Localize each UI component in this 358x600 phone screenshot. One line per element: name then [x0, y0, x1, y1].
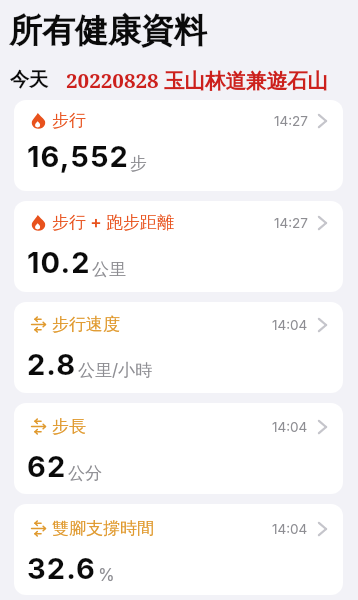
staticText: 步: [130, 153, 147, 174]
button[interactable]: 步行速度: [14, 302, 343, 393]
button[interactable]: 雙腳支撐時間: [14, 504, 343, 595]
staticText: 62: [27, 449, 67, 484]
button[interactable]: 步長: [14, 403, 343, 494]
staticText: 步長: [52, 416, 86, 437]
staticText: 14:04: [272, 317, 308, 333]
staticText: 雙腳支撐時間: [52, 518, 154, 539]
staticText: 公里/小時: [78, 360, 153, 382]
button[interactable]: 步行: [14, 100, 343, 191]
staticText: 10.2: [27, 245, 91, 280]
staticText: 32.6: [27, 551, 97, 586]
staticText: 公里: [92, 259, 126, 280]
staticText: 14:04: [272, 521, 308, 537]
staticText: 步行速度: [52, 314, 120, 335]
staticText: 20220828 玉山林道兼遊石山: [66, 66, 328, 94]
staticText: %: [98, 565, 115, 586]
staticText: 今天: [10, 68, 48, 92]
staticText: 公分: [68, 463, 102, 484]
staticText: 所有健康資料: [9, 10, 207, 52]
staticText: 14:27: [274, 113, 308, 129]
staticText: 14:04: [272, 419, 308, 435]
staticText: 14:27: [274, 215, 308, 231]
staticText: 步行 + 跑步距離: [52, 212, 175, 234]
staticText: 16,552: [27, 139, 129, 174]
staticText: 步行: [52, 110, 86, 131]
staticText: 2.8: [27, 347, 77, 382]
button[interactable]: 步行 + 跑步距離: [14, 201, 343, 292]
